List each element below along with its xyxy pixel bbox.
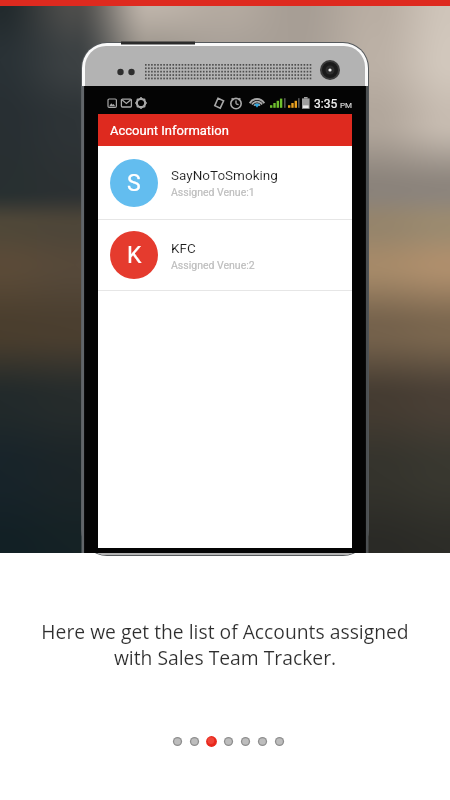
button[interactable]: Page 6 [254,733,271,750]
staticText: KFC [171,240,196,256]
staticText: Here we get the list of Accounts assigne… [41,618,409,671]
staticText: Account Information [110,123,229,138]
button[interactable]: Account Information [98,114,352,146]
staticText: 3:35 [314,97,338,111]
staticText: K [127,242,142,269]
button[interactable]: Page 1 [169,733,186,750]
staticText: SayNoToSmoking [171,167,278,183]
staticText: Assigned Venue:2 [171,259,255,271]
button[interactable]: Page 3 [203,733,220,750]
button[interactable]: Page 7 [271,733,288,750]
button[interactable]: K [98,220,352,290]
staticText: PM [340,101,353,110]
button[interactable]: Page 2 [186,733,203,750]
staticText: S [127,170,141,197]
button[interactable]: Page 4 [220,733,237,750]
button[interactable]: Page 5 [237,733,254,750]
button[interactable]: S [98,146,352,219]
staticText: Assigned Venue:1 [171,186,255,198]
